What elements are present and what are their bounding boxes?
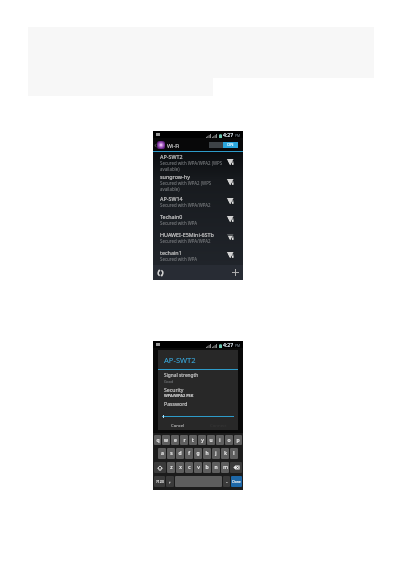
button[interactable]: m — [221, 462, 229, 473]
staticText: w — [164, 437, 168, 444]
staticText: z — [170, 464, 173, 471]
staticText: x — [179, 464, 182, 471]
button[interactable]: Shift — [154, 462, 166, 473]
button[interactable]: o — [225, 435, 233, 445]
staticText: . — [226, 478, 228, 485]
staticText: s — [170, 450, 173, 457]
button[interactable]: l — [230, 448, 238, 459]
button[interactable]: Done — [231, 476, 242, 487]
staticText: Good — [164, 379, 174, 384]
staticText: available) — [160, 186, 180, 192]
button[interactable]: u — [207, 435, 215, 445]
button[interactable]: ?123 — [154, 476, 165, 487]
staticText: Secured with WPA/WPA2 — [160, 238, 211, 244]
button[interactable]: sungrow-hy — [153, 172, 243, 192]
button[interactable]: Scan — [155, 267, 166, 278]
staticText: r — [183, 437, 186, 444]
staticText: WPA/WPA2 PSK — [164, 393, 194, 398]
button[interactable]: h — [203, 448, 211, 459]
staticText: q — [156, 437, 160, 444]
button[interactable]: f — [185, 448, 193, 459]
staticText: ?123 — [156, 479, 164, 484]
button[interactable]: HUAWEI-E5Mini-6STb — [153, 228, 243, 246]
button[interactable]: e — [171, 435, 179, 445]
staticText: v — [197, 464, 200, 471]
staticText: Signal strength — [164, 372, 199, 379]
staticText: Secured with WPA/WPA2 (WPS — [160, 160, 223, 166]
button[interactable]: k — [221, 448, 229, 459]
button[interactable]: Add network — [230, 267, 241, 278]
staticText: techain1 — [160, 249, 182, 256]
other: Shift — [157, 465, 163, 471]
staticText: sungrow-hy — [160, 173, 190, 180]
button[interactable]: a — [158, 448, 166, 459]
button[interactable]: techain1 — [153, 246, 243, 264]
button[interactable]: AP-SWT2 — [153, 152, 243, 172]
button[interactable]: c — [185, 462, 193, 473]
staticText: Done — [232, 479, 241, 484]
button[interactable]: b — [203, 462, 211, 473]
button[interactable]: w — [162, 435, 170, 445]
button[interactable]: g — [194, 448, 202, 459]
staticText: Secured with WPA2 (WPS — [160, 180, 212, 186]
staticText: t — [192, 437, 194, 444]
staticText: Cancel — [171, 422, 185, 428]
button[interactable]: Delete — [230, 462, 242, 473]
staticText: available) — [160, 166, 180, 172]
staticText: Wi-Fi — [167, 142, 180, 149]
staticText: a — [161, 450, 164, 457]
button[interactable]: Wi-Fi on/off — [209, 142, 238, 148]
staticText: e — [174, 437, 177, 444]
button[interactable]: y — [198, 435, 206, 445]
button[interactable]: Techain0 — [153, 210, 243, 228]
button[interactable]: p — [234, 435, 242, 445]
staticText: Techain0 — [160, 213, 183, 220]
button[interactable]: x — [176, 462, 184, 473]
button[interactable]: r — [180, 435, 188, 445]
button[interactable]: v — [194, 462, 202, 473]
staticText: 4:27 — [223, 131, 234, 138]
button[interactable]: z — [167, 462, 175, 473]
button[interactable]: . — [223, 476, 230, 487]
staticText: PM — [235, 343, 241, 348]
staticText: l — [233, 450, 235, 457]
staticText: ON — [227, 142, 234, 148]
staticText: u — [209, 437, 213, 444]
staticText: Security — [164, 386, 184, 393]
staticText: p — [236, 437, 240, 444]
staticText: AP-SWT2 — [164, 355, 196, 365]
staticText: d — [178, 450, 182, 457]
staticText: PM — [235, 133, 241, 138]
staticText: Secured with WPA — [160, 256, 198, 262]
staticText: h — [205, 450, 209, 457]
staticText: 4:27 — [223, 341, 234, 348]
staticText: j — [215, 450, 217, 457]
staticText: , — [169, 478, 171, 485]
button[interactable]: , — [166, 476, 174, 487]
button[interactable]: d — [176, 448, 184, 459]
button[interactable]: Cancel — [158, 419, 198, 430]
other: Delete — [233, 465, 240, 470]
staticText: AP-SWT2 — [160, 153, 183, 160]
staticText: f — [188, 450, 190, 457]
staticText: m — [223, 464, 228, 471]
staticText: o — [227, 437, 231, 444]
button[interactable]: j — [212, 448, 220, 459]
button[interactable]: q — [154, 435, 161, 445]
staticText: HUAWEI-E5Mini-6STb — [160, 231, 214, 238]
button[interactable]: t — [189, 435, 197, 445]
staticText: y — [201, 437, 204, 444]
button[interactable]: i — [216, 435, 224, 445]
staticText: c — [188, 464, 191, 471]
staticText: i — [219, 437, 221, 444]
staticText: Secured with WPA/WPA2 — [160, 202, 211, 208]
button[interactable]: AP-SW14 — [153, 192, 243, 210]
staticText: g — [196, 450, 200, 457]
button[interactable]: s — [167, 448, 175, 459]
button[interactable]: n — [212, 462, 220, 473]
staticText: b — [205, 464, 209, 471]
staticText: Secured with WPA — [160, 220, 198, 226]
